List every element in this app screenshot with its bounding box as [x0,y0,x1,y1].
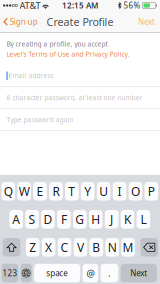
button[interactable]: @ [83,264,98,282]
staticText: Z [29,239,36,255]
button[interactable]: Y [81,182,95,201]
button[interactable]: Email address [0,65,160,87]
button[interactable]: S [25,210,39,229]
button[interactable]: M [121,238,135,257]
staticText: Create Profile [46,15,113,29]
staticText: O [131,183,140,199]
staticText: U [99,183,108,199]
button[interactable]: space [34,264,80,282]
button[interactable]: T [65,182,79,201]
button[interactable]: O [129,182,142,201]
staticText: D [43,211,52,227]
staticText: V [77,239,84,255]
button[interactable]: X [42,238,55,257]
button[interactable]: 8 character password, at least one numbe… [0,87,160,109]
staticText: AT&T [19,0,40,12]
staticText: Q [4,183,13,199]
staticText: L [140,211,146,227]
button[interactable]: P [145,182,158,201]
staticText: 8 character password, at least one numbe… [6,93,142,102]
button[interactable]: F [57,210,71,229]
staticText: H [91,211,100,227]
staticText: Next [130,268,147,278]
staticText: A [12,211,20,227]
staticText: T [68,183,75,199]
staticText: B [92,239,100,255]
staticText: 123 [2,268,17,278]
staticText: . [108,267,111,279]
button[interactable]: U [97,182,110,201]
staticText: @ [86,267,94,279]
button[interactable]: Next [133,11,160,32]
button[interactable]: B [89,238,103,257]
staticText: K [124,211,131,227]
button[interactable]: Delete [140,238,158,257]
button[interactable]: C [58,238,71,257]
staticText: P [148,183,155,199]
staticText: Next [138,16,155,27]
staticText: G [75,211,84,227]
button[interactable]: D [41,210,55,229]
button[interactable]: N [105,238,119,257]
button[interactable]: G [73,210,87,229]
staticText: F [61,211,67,227]
button[interactable]: K [121,210,134,229]
button[interactable]: Level's Terms of Use and Privacy Policy. [6,50,129,59]
button[interactable]: V [74,238,87,257]
button[interactable]: J [105,210,118,229]
button[interactable]: R [49,182,63,201]
staticText: Type password again [6,115,73,124]
staticText: Y [84,183,91,199]
staticText: Level's Terms of Use and Privacy Policy. [6,50,129,59]
staticText: X [45,239,52,255]
staticText: 56% [123,0,140,11]
staticText: S [29,211,36,227]
button[interactable]: Sign up [0,11,43,32]
button[interactable]: W [17,182,31,201]
button[interactable]: H [89,210,102,229]
staticText: 12:15 AM [62,0,98,11]
staticText: J [110,211,113,227]
button[interactable]: . [101,264,118,282]
staticText: N [108,239,117,255]
button[interactable]: A [9,210,23,229]
button[interactable]: Type password again [0,109,160,131]
button[interactable]: I [113,182,126,201]
button[interactable]: E [33,182,47,201]
staticText: Email address [9,71,54,80]
staticText: space [46,268,68,278]
staticText: C [60,239,68,255]
staticText: By creating a profile, you accept [6,39,107,48]
button[interactable]: Z [26,238,39,257]
staticText: Sign up [10,16,38,27]
button[interactable]: 123 [2,264,18,282]
staticText: I [118,183,122,199]
button[interactable]: Switch keyboard [21,264,32,282]
staticText: R [52,183,59,199]
button[interactable]: L [137,210,150,229]
staticText: M [123,239,134,255]
button[interactable]: Next [121,264,157,282]
staticText: W [19,183,30,199]
staticText: E [36,183,43,199]
button[interactable]: Q [1,182,15,201]
button[interactable]: Shift [3,238,20,257]
